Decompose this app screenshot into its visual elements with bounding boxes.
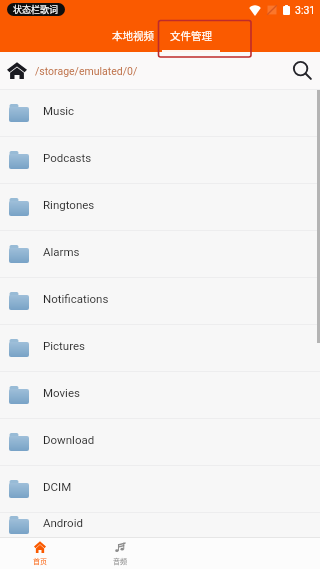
button[interactable]: 首页 bbox=[0, 538, 80, 569]
staticText: Alarms bbox=[43, 245, 80, 258]
button[interactable]: Android bbox=[0, 513, 320, 537]
staticText: Music bbox=[43, 104, 75, 117]
staticText: Ringtones bbox=[43, 198, 95, 211]
button[interactable]: Podcasts bbox=[0, 137, 320, 183]
staticText: 状态栏歌词 bbox=[13, 3, 59, 16]
button[interactable]: Home bbox=[0, 52, 33, 89]
staticText: Podcasts bbox=[43, 151, 92, 164]
button[interactable]: Search bbox=[284, 52, 320, 89]
button[interactable]: 音频 bbox=[80, 538, 160, 569]
staticText: 首页 bbox=[33, 556, 47, 566]
button[interactable]: Alarms bbox=[0, 231, 320, 277]
button[interactable]: 本地视频 bbox=[104, 19, 162, 52]
button[interactable]: Ringtones bbox=[0, 184, 320, 230]
staticText: 文件管理 bbox=[170, 28, 212, 43]
staticText: DCIM bbox=[43, 480, 72, 493]
staticText: Movies bbox=[43, 386, 80, 399]
staticText: Notifications bbox=[43, 292, 109, 305]
button[interactable]: Notifications bbox=[0, 278, 320, 324]
staticText: 本地视频 bbox=[112, 28, 154, 43]
button[interactable]: 文件管理 bbox=[162, 19, 220, 52]
button[interactable]: DCIM bbox=[0, 466, 320, 512]
staticText: Android bbox=[43, 516, 83, 529]
staticText: Pictures bbox=[43, 339, 85, 352]
staticText: /storage/emulated/0/ bbox=[35, 65, 138, 77]
staticText: 3:31 bbox=[295, 4, 316, 16]
staticText: Download bbox=[43, 433, 95, 446]
staticText: 音频 bbox=[113, 556, 127, 566]
button[interactable]: Pictures bbox=[0, 325, 320, 371]
button[interactable]: Music bbox=[0, 90, 320, 136]
button[interactable]: Download bbox=[0, 419, 320, 465]
button[interactable]: Movies bbox=[0, 372, 320, 418]
